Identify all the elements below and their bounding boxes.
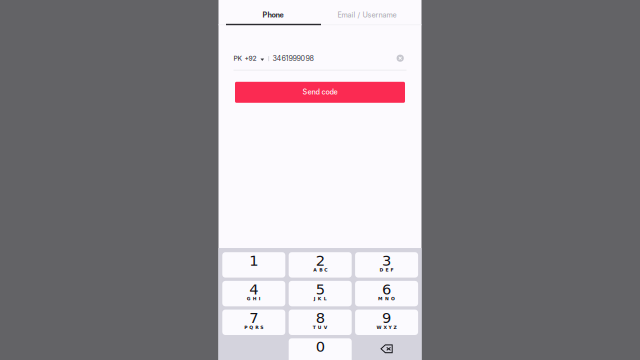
staticText: A B C — [313, 267, 327, 273]
button[interactable]: 6 — [355, 281, 418, 306]
staticText: Send code — [302, 87, 337, 96]
staticText: 4 — [249, 281, 258, 298]
staticText: 3 — [382, 252, 391, 269]
button[interactable]: 9 — [355, 310, 418, 335]
button[interactable]: 8 — [289, 310, 352, 335]
staticText: 8 — [316, 309, 325, 327]
staticText: 5 — [316, 281, 325, 298]
staticText: 0 — [316, 338, 325, 355]
staticText: 2 — [316, 252, 325, 269]
button[interactable]: Phone — [226, 0, 320, 25]
button[interactable]: 1 — [222, 252, 285, 278]
button[interactable]: 4 — [222, 281, 285, 306]
staticText: Email / Username — [337, 11, 396, 19]
staticText: T U V — [313, 325, 328, 330]
button[interactable]: 5 — [289, 281, 352, 306]
button[interactable]: 0 — [289, 338, 352, 360]
staticText: Phone — [262, 11, 283, 19]
staticText: M N O — [378, 296, 395, 301]
staticText: P Q R S — [244, 325, 263, 330]
button[interactable]: 7 — [222, 310, 285, 335]
button[interactable]: 3 — [355, 252, 418, 278]
staticText: 3461999098 — [272, 54, 313, 63]
staticText: G H I — [247, 296, 261, 301]
button[interactable]: Email / Username — [320, 0, 414, 25]
staticText: 1 — [249, 252, 258, 269]
button[interactable]: Delete — [355, 338, 418, 360]
staticText: 9 — [382, 309, 391, 327]
button[interactable]: 2 — [289, 252, 352, 278]
staticText: PK +92 — [233, 54, 256, 62]
staticText: 7 — [249, 309, 258, 327]
button[interactable]: Clear text — [394, 52, 406, 64]
staticText: 6 — [382, 281, 391, 298]
button[interactable]: Send code — [235, 82, 405, 103]
staticText: D E F — [380, 267, 394, 273]
staticText: J K L — [314, 296, 327, 301]
staticText: W X Y Z — [377, 325, 397, 330]
